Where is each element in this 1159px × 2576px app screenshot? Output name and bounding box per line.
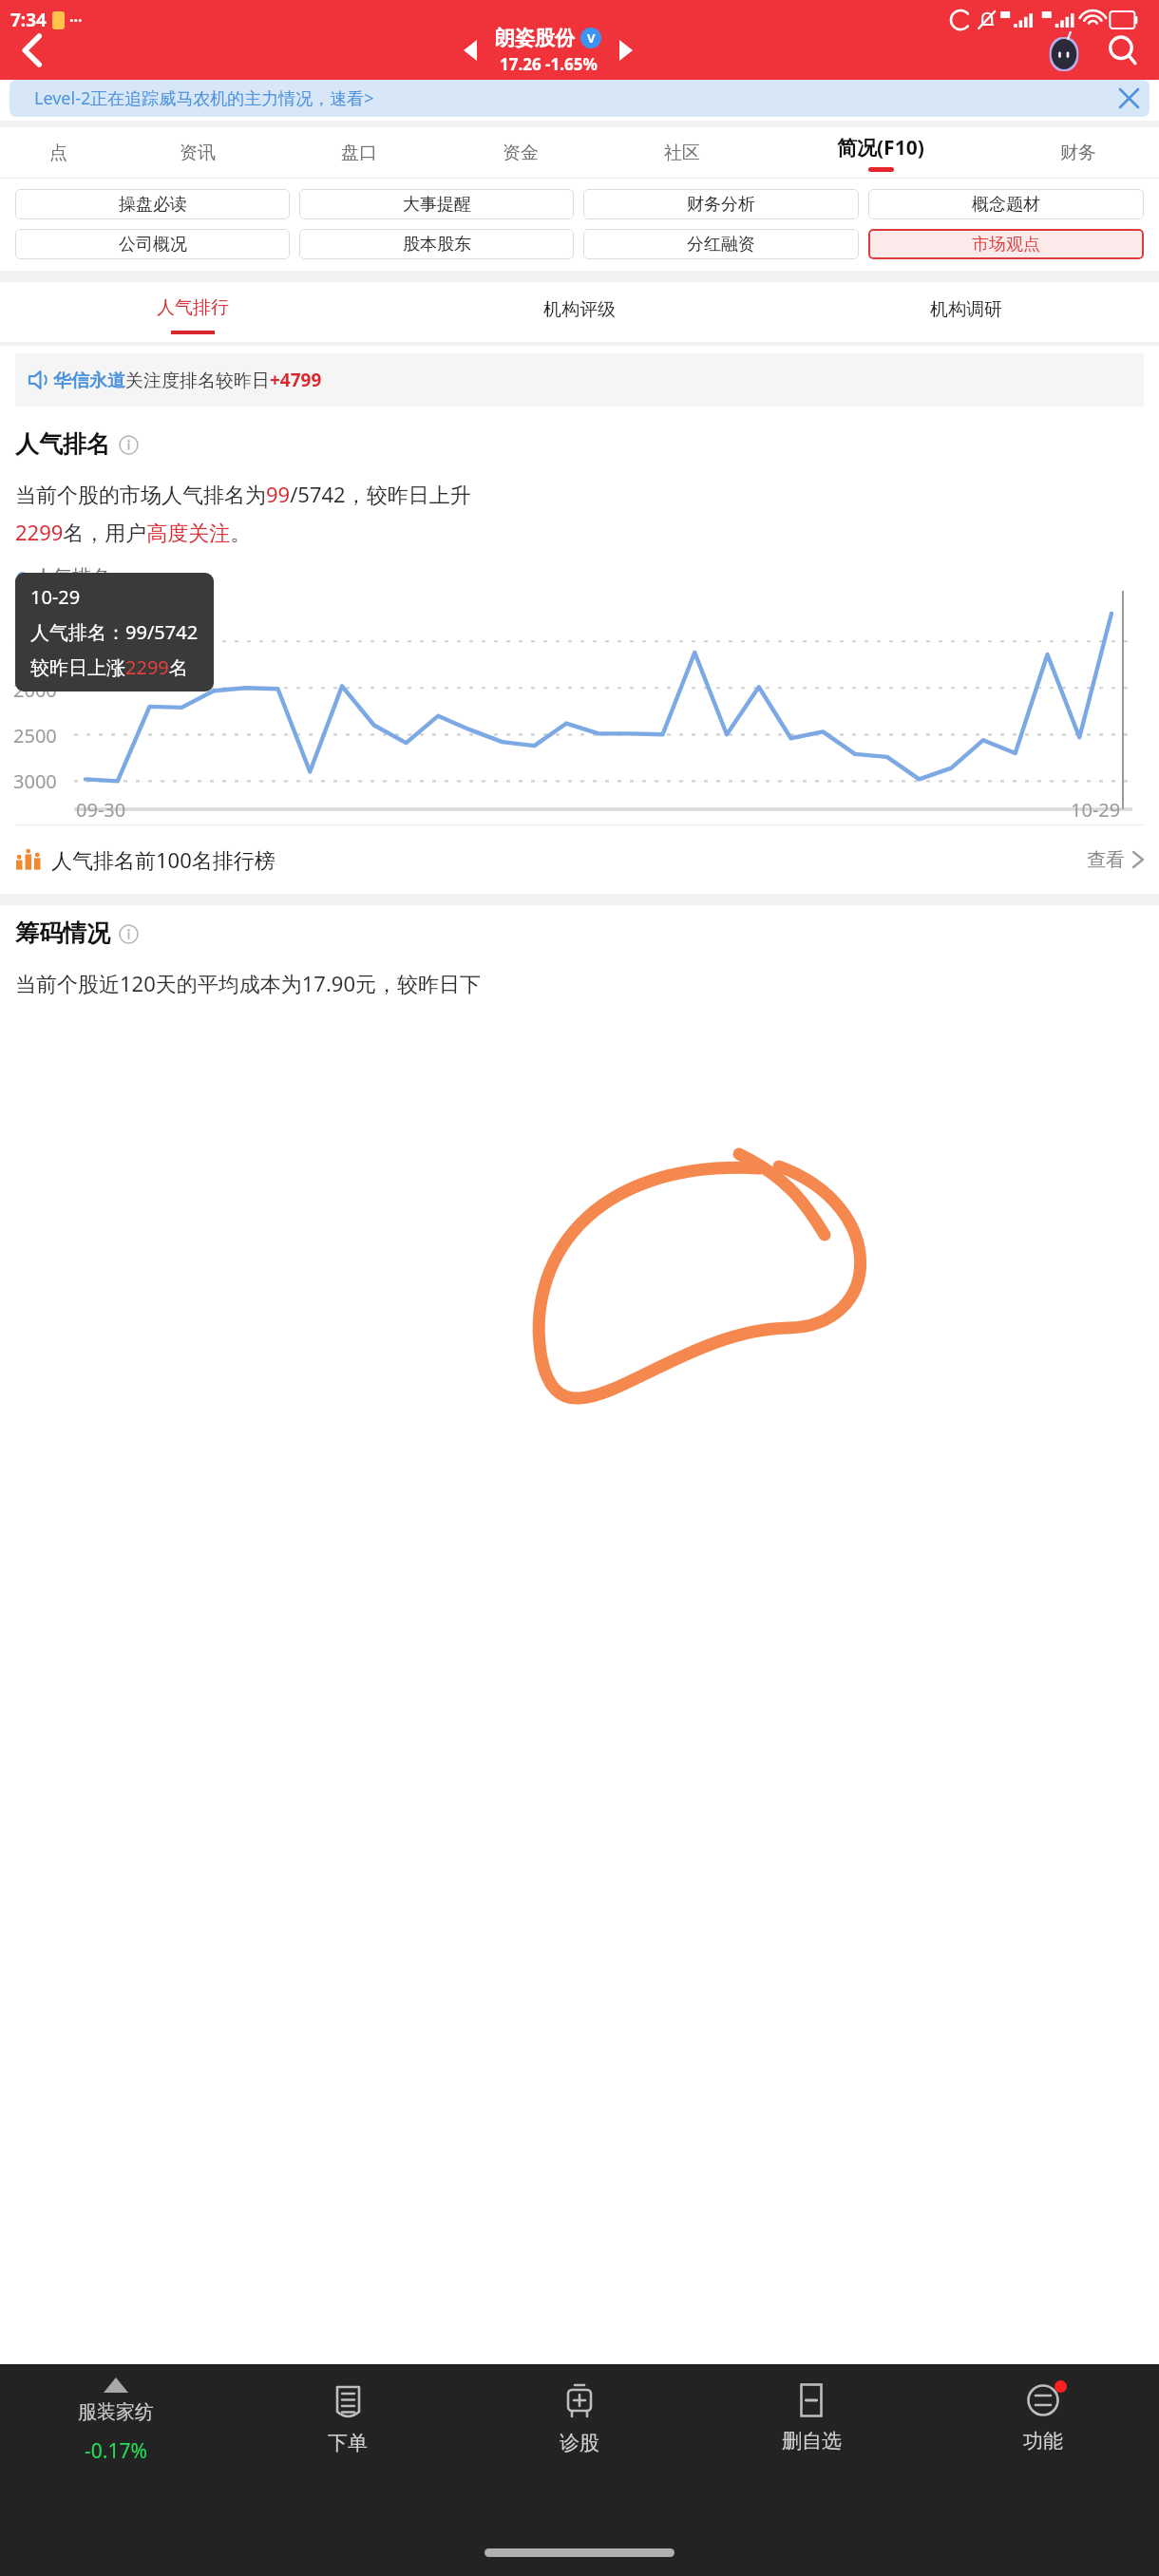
button[interactable]: 分红融资 [583,229,859,259]
staticText: 朗姿股份 [495,26,575,50]
staticText: 资金 [503,142,539,164]
staticText: 人气排名：99/5742 [30,619,199,645]
staticText: 社区 [664,142,700,164]
staticText: 较昨日上涨2299名 [30,654,188,680]
button[interactable]: 机构评级 [386,282,772,342]
button[interactable]: 财务分析 [583,189,859,219]
staticText: 09-30 [76,797,126,823]
staticText: 17.26 -1.65% [500,53,598,75]
staticText: 机构调研 [930,298,1002,321]
staticText: 人气排行 [157,296,229,319]
button[interactable]: Close banner [1108,80,1149,117]
staticText: 下单 [328,2431,368,2455]
staticText: Level-2正在追踪威马农机的主力情况，速看> [34,86,374,110]
staticText: V [587,29,596,47]
staticText: 华信永道关注度排名较昨日+4799 [53,368,322,392]
staticText: 诊股 [560,2431,599,2455]
button[interactable]: Info [118,434,139,455]
staticText: -0.17% [85,2437,147,2465]
staticText: 2500 [13,723,57,748]
button[interactable]: 简况(F10) [763,127,997,178]
staticText: 当前个股近120天的平均成本为17.90元，较昨日下 [15,969,481,997]
staticText: 功能 [1023,2429,1063,2453]
button[interactable]: 点 [0,127,117,178]
button[interactable]: Back [8,26,57,75]
staticText: 财务分析 [687,194,755,216]
staticText: 操盘必读 [119,194,187,216]
button[interactable]: Next stock [607,31,645,69]
staticText: 分红融资 [687,234,755,256]
staticText: 删自选 [782,2429,842,2453]
staticText: 点 [49,142,67,164]
staticText: 10-29 [1071,797,1121,823]
staticText: 公司概况 [119,234,187,256]
staticText: 资讯 [180,142,216,164]
staticText: 查看 [1087,848,1125,872]
staticText: 筹码情况 [15,919,110,948]
staticText: ··· [69,9,83,30]
button[interactable]: Search [1098,26,1148,75]
staticText: 股本股东 [403,234,471,256]
button[interactable]: Assistant [1039,26,1089,75]
button[interactable]: 服装家纺 [0,2364,232,2516]
staticText: 7:34 [10,8,47,32]
button[interactable]: 华信永道关注度排名较昨日+4799 [28,353,1144,407]
staticText: 市场观点 [972,234,1040,256]
button[interactable]: 概念题材 [868,189,1144,219]
staticText: 10-29 [30,584,81,610]
button[interactable]: 财务 [997,127,1159,178]
button[interactable]: 大事提醒 [299,189,574,219]
staticText: 盘口 [341,142,377,164]
staticText: 财务 [1060,142,1096,164]
button[interactable]: 下单 [232,2364,464,2516]
staticText: 人气排名前100名排行榜 [51,845,275,874]
staticText: 概念题材 [972,194,1040,216]
staticText: 简况(F10) [837,134,924,161]
staticText: 服装家纺 [78,2400,154,2424]
staticText: 1500 [13,632,57,657]
button[interactable]: 市场观点 [868,229,1144,259]
button[interactable]: 人气排名前100名排行榜 [15,825,1144,894]
button[interactable]: 人气排行 [0,282,386,342]
button[interactable]: 机构调研 [772,282,1159,342]
staticText: 3000 [13,768,57,794]
button[interactable]: 操盘必读 [15,189,290,219]
staticText: 人气排名 [15,429,110,459]
button[interactable]: 公司概况 [15,229,290,259]
button[interactable]: 诊股 [464,2364,695,2516]
button[interactable]: 功能 [927,2364,1159,2516]
staticText: 机构评级 [543,298,616,321]
staticText: 大事提醒 [403,194,471,216]
button[interactable]: Info [118,923,139,944]
button[interactable]: 删自选 [695,2364,927,2516]
button[interactable]: 股本股东 [299,229,574,259]
staticText: 当前个股的市场人气排名为99/5742，较昨日上升 2299名，用户高度关注。 [15,480,471,546]
button[interactable]: 社区 [601,127,763,178]
button[interactable]: 资讯 [117,127,278,178]
button[interactable]: 资金 [440,127,601,178]
staticText: 人气排名 [34,565,110,589]
button[interactable]: 盘口 [278,127,440,178]
staticText: 2000 [13,677,57,703]
button[interactable]: 朗姿股份 [489,26,607,75]
button[interactable]: Previous stock [451,31,489,69]
button[interactable]: Level-2正在追踪威马农机的主力情况，速看> [9,80,1149,117]
